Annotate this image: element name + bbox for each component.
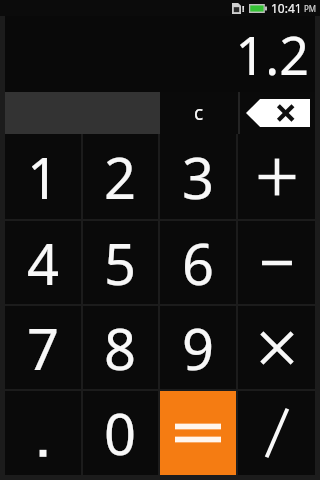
- button[interactable]: 5: [83, 221, 158, 304]
- button[interactable]: Minus: [238, 221, 315, 304]
- other: Multiply: [257, 328, 297, 368]
- button[interactable]: 2: [83, 134, 158, 219]
- staticText: !: [242, 2, 245, 14]
- button[interactable]: 0: [83, 391, 158, 475]
- button[interactable]: Divide: [238, 391, 315, 475]
- other: Divide: [257, 406, 297, 460]
- other: Minus: [255, 241, 299, 285]
- staticText: c: [194, 100, 204, 126]
- staticText: 1.2: [235, 19, 309, 90]
- staticText: 7: [27, 310, 60, 386]
- staticText: 3: [182, 139, 215, 215]
- staticText: 4: [27, 225, 60, 301]
- staticText: PM: [304, 3, 317, 14]
- other: Decimal point: [5, 391, 81, 475]
- button[interactable]: c: [160, 92, 238, 134]
- button[interactable]: 9: [160, 306, 236, 389]
- button[interactable]: Plus: [238, 134, 315, 219]
- staticText: 2: [104, 139, 137, 215]
- button[interactable]: Equals: [160, 391, 236, 475]
- other: Plus: [255, 155, 299, 199]
- button[interactable]: Multiply: [238, 306, 315, 389]
- staticText: 5: [104, 225, 137, 301]
- button[interactable]: Decimal point: [5, 391, 81, 475]
- staticText: 10:41: [271, 0, 302, 16]
- button[interactable]: 6: [160, 221, 236, 304]
- button[interactable]: 1: [5, 134, 81, 219]
- button[interactable]: 3: [160, 134, 236, 219]
- button[interactable]: Backspace: [240, 92, 315, 134]
- button[interactable]: 4: [5, 221, 81, 304]
- staticText: 9: [182, 310, 215, 386]
- other: Equals: [160, 391, 236, 475]
- button[interactable]: 8: [83, 306, 158, 389]
- staticText: 6: [182, 225, 215, 301]
- button[interactable]: 7: [5, 306, 81, 389]
- staticText: 8: [104, 310, 137, 386]
- staticText: 0: [104, 395, 137, 471]
- staticText: 1: [27, 139, 60, 215]
